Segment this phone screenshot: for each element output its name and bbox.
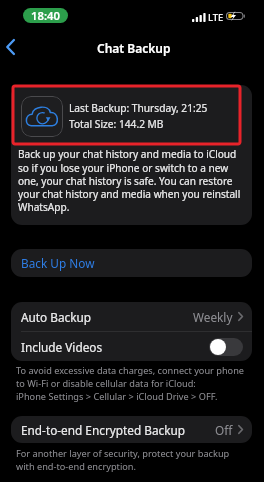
other: Open bbox=[238, 312, 243, 321]
staticText: Last Backup: Thursday, 21:25 bbox=[69, 101, 208, 115]
staticText: For another layer of security, protect y… bbox=[16, 447, 246, 473]
staticText: Include Videos bbox=[21, 339, 103, 355]
staticText: To avoid excessive data charges, connect… bbox=[16, 364, 246, 403]
staticText: Off bbox=[215, 422, 233, 438]
button[interactable]: Include Videos bbox=[11, 332, 252, 361]
staticText: Total Size: 144.2 MB bbox=[69, 117, 164, 131]
staticText: Back Up Now bbox=[21, 255, 95, 271]
button[interactable]: Back Up Now bbox=[11, 249, 252, 277]
staticText: Chat Backup bbox=[97, 40, 171, 56]
staticText: Back up your chat history and media to i… bbox=[18, 147, 246, 213]
button[interactable]: Include Videos toggle bbox=[209, 338, 243, 356]
button[interactable]: Back bbox=[0, 33, 20, 60]
staticText: LTE bbox=[208, 11, 224, 24]
other: Open bbox=[238, 425, 243, 434]
staticText: 18:40 bbox=[31, 8, 60, 23]
button[interactable]: End-to-end Encrypted Backup bbox=[11, 416, 252, 443]
button[interactable]: Auto Backup bbox=[11, 302, 252, 331]
staticText: End-to-end Encrypted Backup bbox=[21, 422, 186, 438]
staticText: Weekly bbox=[193, 309, 233, 325]
staticText: Auto Backup bbox=[21, 309, 92, 325]
